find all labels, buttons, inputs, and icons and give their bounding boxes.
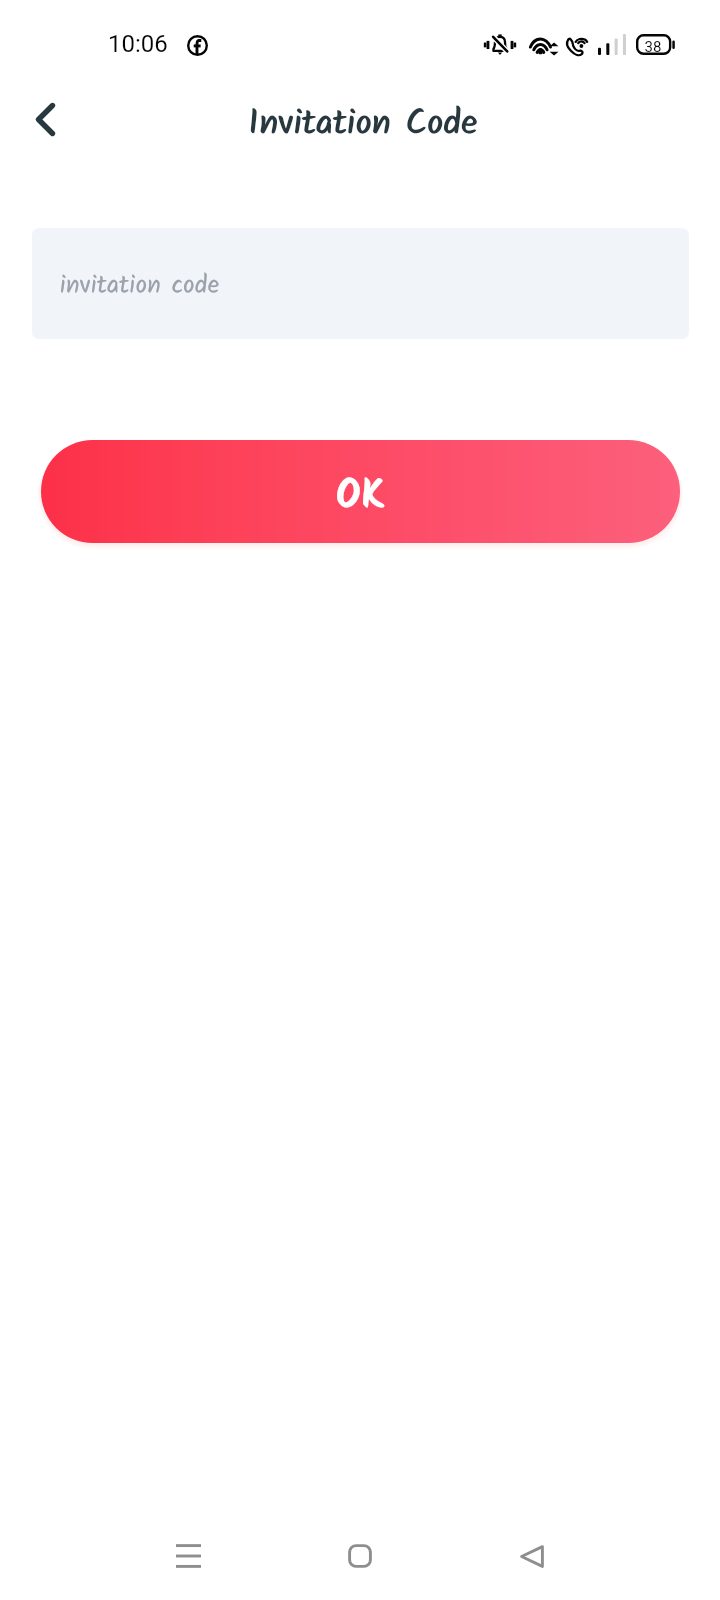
- staticText: 38: [636, 38, 670, 56]
- button[interactable]: Home: [324, 1520, 396, 1592]
- button[interactable]: OK: [41, 440, 680, 543]
- staticText: 10:06: [108, 30, 168, 58]
- staticText: invitation code: [61, 265, 221, 306]
- button[interactable]: Back: [496, 1520, 568, 1592]
- button[interactable]: Back: [14, 88, 76, 150]
- button[interactable]: invitation code: [32, 228, 689, 339]
- staticText: Invitation Code: [0, 96, 720, 153]
- staticText: OK: [338, 464, 389, 529]
- button[interactable]: Recent apps: [152, 1520, 224, 1592]
- staticText: Invitation Code: [1, 96, 720, 153]
